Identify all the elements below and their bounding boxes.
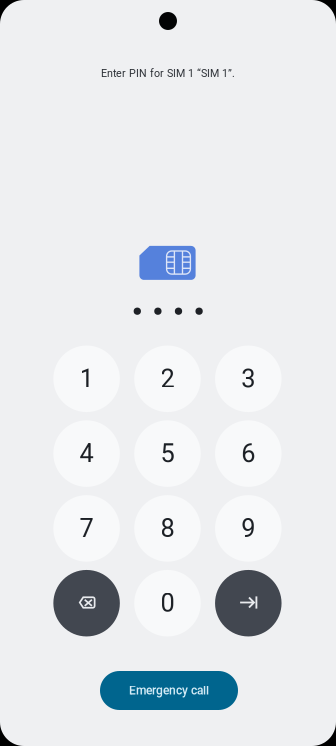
staticText: 0	[160, 588, 174, 618]
button[interactable]: Enter	[215, 570, 282, 636]
staticText: 1	[80, 364, 94, 394]
staticText: Emergency call	[129, 683, 209, 698]
button[interactable]: 4	[53, 420, 120, 487]
staticText: 9	[241, 514, 255, 543]
staticText: 5	[160, 439, 174, 468]
button[interactable]: 2	[134, 346, 201, 412]
button[interactable]: 0	[134, 570, 201, 636]
button[interactable]: 8	[134, 495, 201, 562]
button[interactable]: Emergency call	[100, 671, 238, 710]
staticText: 4	[80, 439, 94, 468]
button[interactable]: 7	[53, 495, 120, 562]
staticText: 7	[80, 514, 94, 543]
button[interactable]: Delete	[53, 570, 120, 636]
staticText: Enter PIN for SIM 1 “SIM 1”.	[101, 67, 235, 80]
staticText: 8	[160, 514, 174, 543]
button[interactable]: 3	[215, 346, 282, 412]
staticText: 6	[241, 439, 255, 468]
staticText: 2	[160, 364, 174, 394]
button[interactable]: 1	[53, 346, 120, 412]
button[interactable]: 9	[215, 495, 282, 562]
button[interactable]: 6	[215, 420, 282, 487]
staticText: 3	[241, 364, 255, 394]
button[interactable]: 5	[134, 420, 201, 487]
